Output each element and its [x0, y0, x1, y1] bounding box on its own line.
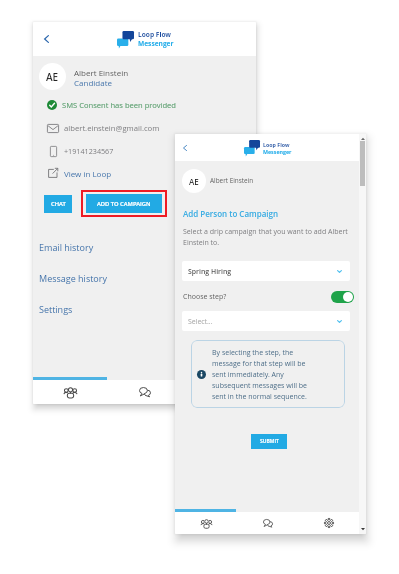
button[interactable]: People [175, 512, 237, 534]
staticText: albert.einstein@gmail.com [64, 123, 160, 133]
staticText: Email history [39, 241, 94, 253]
staticText: +19141234567 [64, 146, 114, 156]
staticText: By selecting the step, the message for t… [212, 348, 311, 401]
staticText: Loop Flow [138, 30, 172, 39]
button[interactable]: People [33, 380, 108, 404]
button[interactable]: +19141234567 [47, 144, 109, 158]
staticText: Select a drip campaign that you want to … [183, 227, 353, 247]
button[interactable]: SUBMIT [251, 434, 287, 449]
staticText: Select... [188, 317, 213, 326]
button[interactable]: SMS Consent has been provided [47, 98, 172, 112]
button[interactable]: Message history [33, 267, 256, 289]
button[interactable]: Settings [298, 512, 359, 534]
staticText: Messenger [138, 39, 174, 48]
staticText: Choose step? [183, 292, 227, 302]
button[interactable]: Back [36, 29, 56, 49]
staticText: View in Loop [64, 168, 112, 179]
staticText: Add Person to Campaign [183, 208, 279, 219]
staticText: Candidate [74, 77, 112, 88]
button[interactable]: Back [177, 140, 193, 156]
staticText: Loop Flow [263, 141, 290, 148]
staticText: AE [189, 176, 199, 187]
button[interactable]: ADD TO CAMPAIGN [86, 194, 162, 213]
button[interactable]: Settings [182, 380, 256, 404]
button[interactable]: CHAT [44, 195, 72, 213]
button[interactable]: Select... [182, 311, 350, 331]
staticText: Message history [39, 272, 108, 284]
button[interactable]: Spring Hiring [182, 261, 350, 281]
staticText: Messenger [263, 148, 292, 155]
button[interactable]: Settings [33, 298, 256, 320]
button[interactable]: Email history [33, 236, 256, 258]
staticText: Albert Einstein [74, 67, 129, 78]
button[interactable]: Messages [108, 380, 182, 404]
button[interactable]: albert.einstein@gmail.com [47, 121, 155, 135]
staticText: ADD TO CAMPAIGN [97, 200, 151, 208]
staticText: Albert Einstein [210, 176, 254, 185]
staticText: AE [46, 70, 59, 84]
staticText: SUBMIT [260, 438, 279, 445]
staticText: Settings [39, 303, 73, 315]
button[interactable]: Messages [237, 512, 298, 534]
button[interactable]: Choose step toggle [331, 291, 354, 303]
staticText: CHAT [51, 200, 66, 208]
button[interactable]: View in Loop [47, 166, 107, 180]
staticText: Spring Hiring [188, 267, 232, 276]
staticText: SMS Consent has been provided [62, 100, 177, 110]
